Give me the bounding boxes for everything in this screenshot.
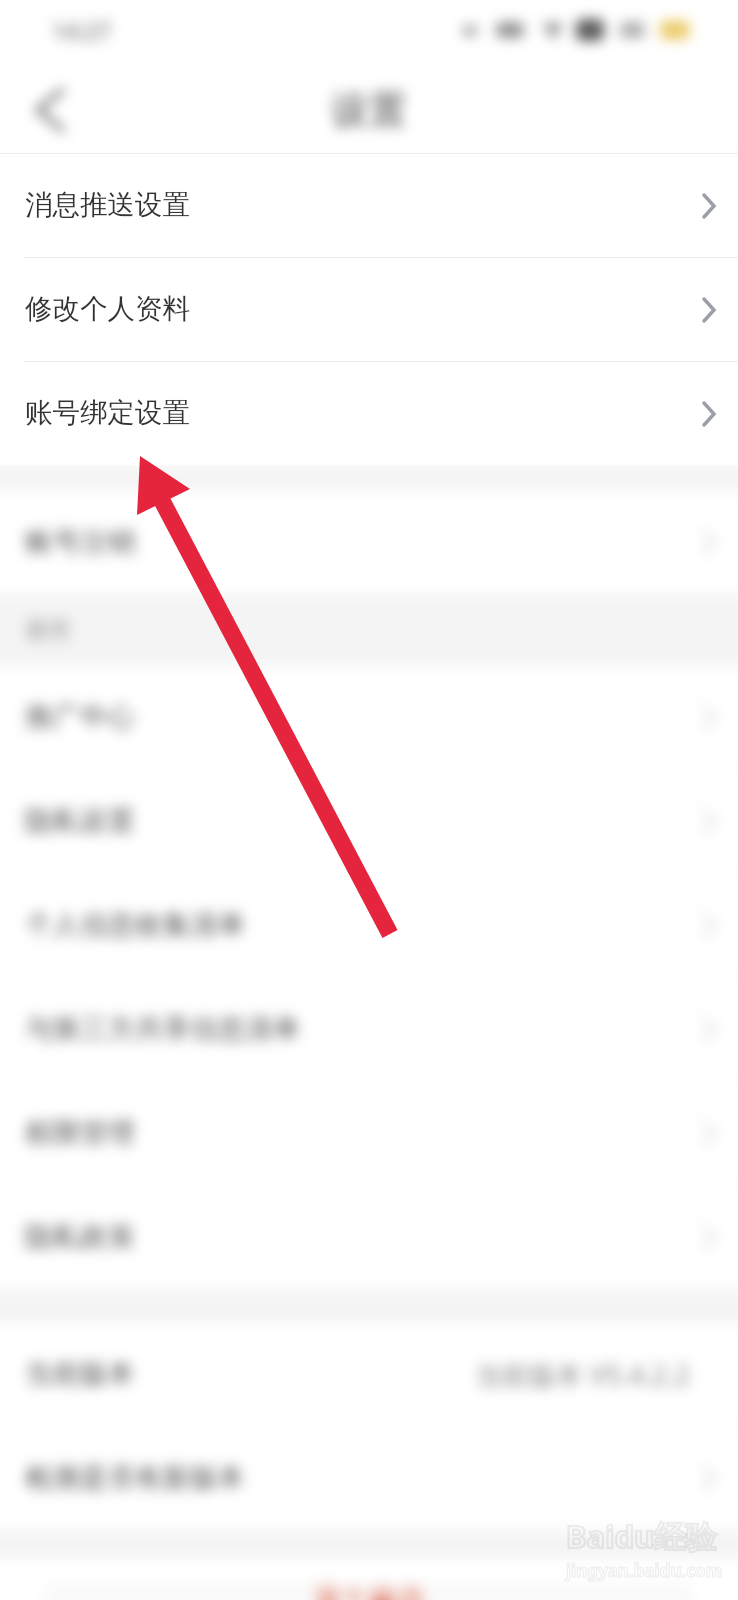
staticText: 修改个人资料 (25, 292, 190, 327)
button[interactable]: 消息推送设置 (0, 154, 738, 257)
button[interactable]: 修改个人资料 (0, 258, 738, 361)
button[interactable]: 权限管理 (0, 1082, 738, 1185)
button[interactable]: 账号注销 (0, 491, 738, 594)
button[interactable]: 消息推送设置 (0, 154, 738, 257)
button[interactable]: 隐私政策 (0, 1186, 738, 1289)
button[interactable]: 推广中心 (0, 666, 738, 769)
staticText: 当前版本 V5.4.2.2 (475, 1356, 690, 1393)
staticText: 消息推送设置 (25, 188, 190, 223)
button[interactable]: 账号绑定设置 (0, 362, 738, 465)
staticText: 个人信息收集清单 (25, 908, 245, 943)
staticText: 账号绑定设置 (25, 396, 190, 431)
staticText: 权限管理 (25, 1116, 135, 1151)
button[interactable]: 个人信息收集清单 (0, 874, 738, 977)
staticText: 退出登录 (313, 1582, 425, 1600)
button[interactable]: 检测是否有新版本 (0, 1427, 738, 1530)
staticText: 消息推送设置 (25, 188, 190, 223)
button[interactable]: 隐私设置 (0, 770, 738, 873)
staticText: 检测是否有新版本 (25, 1461, 245, 1496)
staticText: 与第三方共享信息清单 (25, 1012, 300, 1047)
staticText: 设置 (331, 86, 407, 134)
staticText: 修改个人资料 (25, 292, 190, 327)
staticText: 推广中心 (25, 700, 135, 735)
button[interactable]: 当前版本 (0, 1323, 738, 1426)
button[interactable]: 账号绑定设置 (0, 362, 738, 465)
button[interactable]: 与第三方共享信息清单 (0, 978, 738, 1081)
staticText: 隐私设置 (25, 804, 135, 839)
staticText: 隐私政策 (25, 1220, 135, 1255)
staticText: 通用 (24, 616, 70, 645)
staticText: Baidu经验 (566, 1515, 717, 1557)
staticText: 14:27 (52, 15, 111, 46)
staticText: jingyan.baidu.com (566, 1559, 723, 1582)
button[interactable]: 修改个人资料 (0, 258, 738, 361)
staticText: 账号绑定设置 (25, 396, 190, 431)
button[interactable]: Back (22, 82, 78, 138)
staticText: 账号注销 (25, 525, 135, 560)
staticText: 当前版本 (25, 1357, 135, 1392)
button[interactable]: 退出登录 (44, 1582, 694, 1600)
